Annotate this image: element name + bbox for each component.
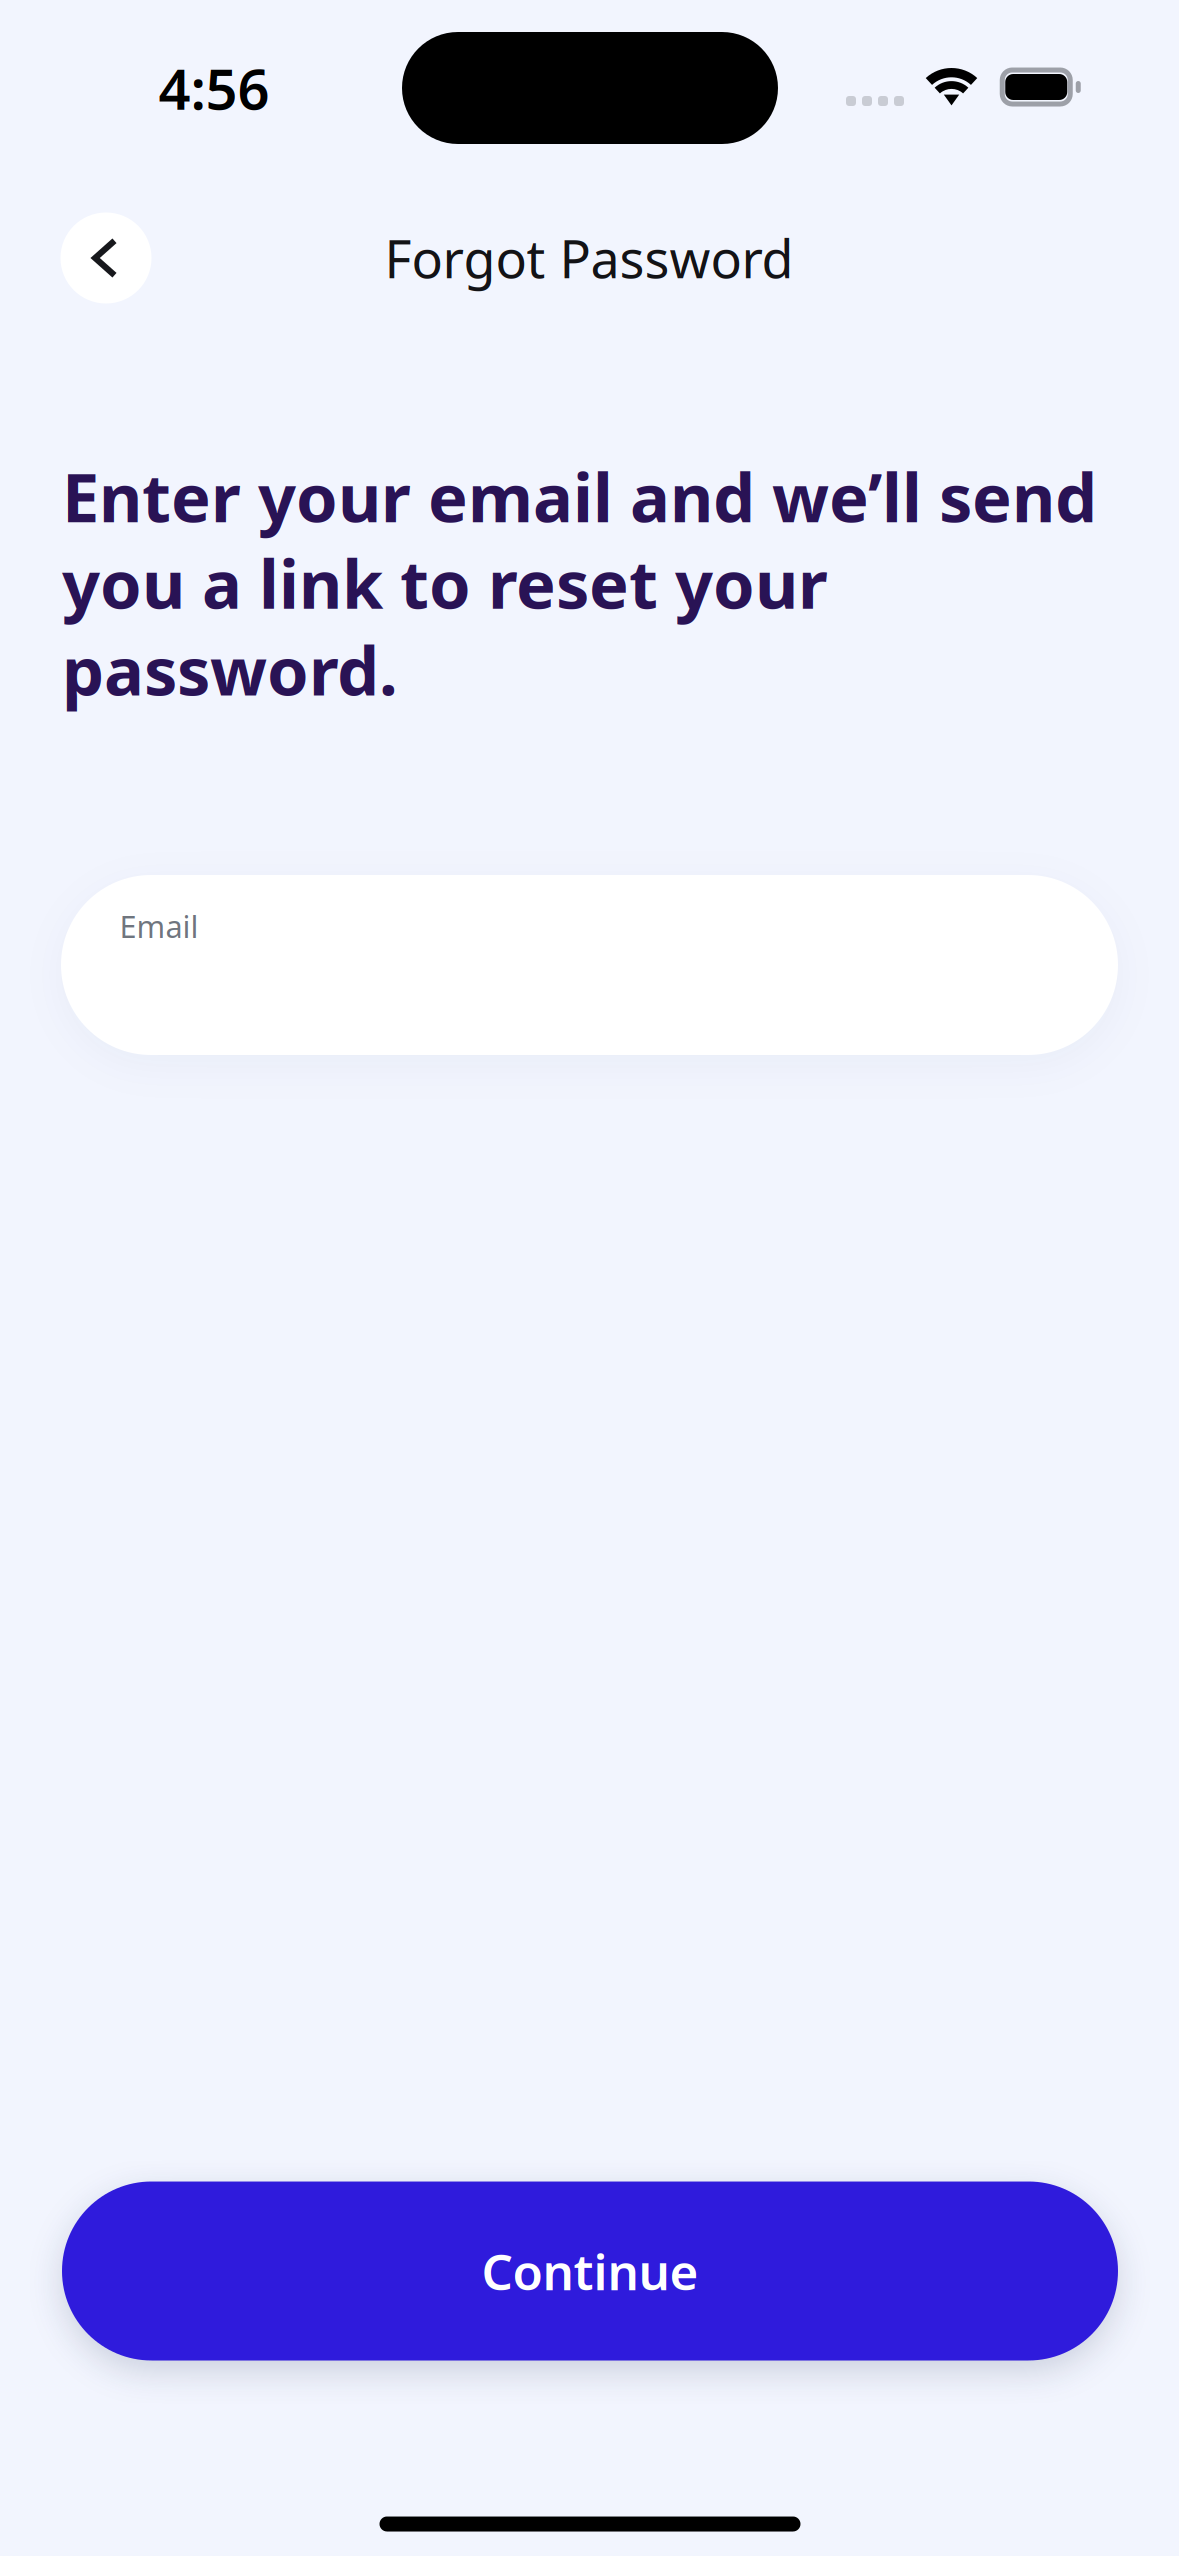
button[interactable]: Continue — [62, 2181, 1118, 2360]
staticText: 4:56 — [158, 51, 269, 125]
staticText: Enter your email and we’ll send you a li… — [62, 452, 1097, 714]
button[interactable]: Email — [61, 875, 1118, 1055]
staticText: Continue — [481, 2238, 698, 2304]
staticText: Email — [119, 906, 198, 946]
button[interactable]: Back — [60, 212, 151, 303]
staticText: Forgot Password — [384, 223, 793, 293]
